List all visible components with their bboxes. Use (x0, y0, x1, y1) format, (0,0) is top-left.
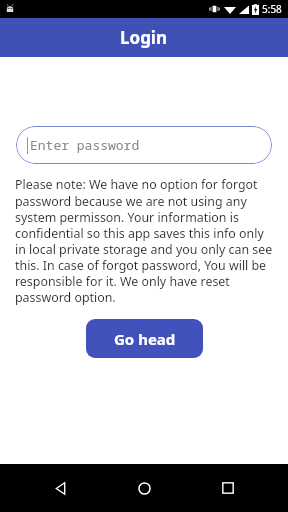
button[interactable]: Recent apps (204, 464, 252, 512)
staticText: Login (120, 26, 168, 49)
button[interactable]: Back (36, 464, 84, 512)
button[interactable]: Home (120, 464, 168, 512)
staticText: 5:58 (262, 2, 282, 16)
button[interactable]: Go head (86, 319, 203, 358)
staticText: Go head (114, 329, 176, 349)
button[interactable]: Enter password (16, 126, 272, 164)
staticText: Enter password (30, 136, 140, 154)
staticText: Please note: We have no option for forgo… (15, 176, 275, 305)
